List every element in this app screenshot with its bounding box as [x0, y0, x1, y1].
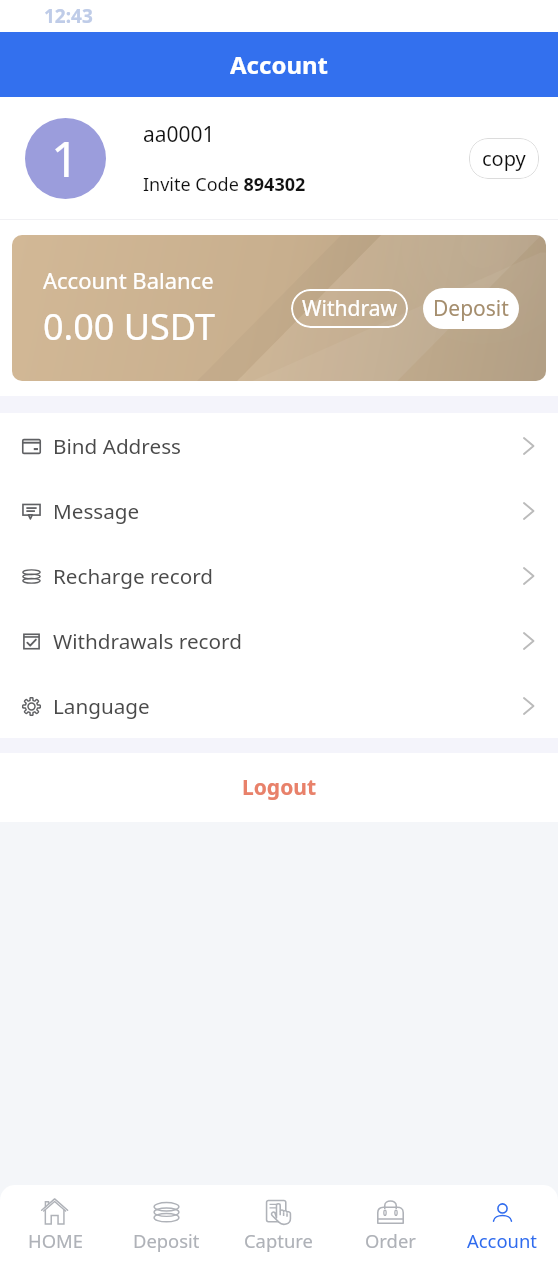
staticText: Withdraw [302, 294, 397, 323]
staticText: Invite Code 894302 [143, 172, 306, 197]
button[interactable]: Deposit [423, 288, 519, 329]
staticText: Logout [242, 773, 317, 802]
staticText: Account [230, 48, 328, 81]
button[interactable]: Withdrawals record [0, 608, 558, 673]
staticText: Language [53, 692, 520, 720]
button[interactable]: Withdraw [291, 289, 408, 328]
other: Deposit [151, 1195, 182, 1226]
other: Capture [263, 1195, 294, 1226]
staticText: Recharge record [53, 562, 520, 590]
staticText: Bind Address [53, 432, 520, 460]
button[interactable]: Logout [0, 753, 558, 822]
button[interactable]: Bind Address [0, 413, 558, 478]
staticText: 12:43 [44, 3, 93, 29]
staticText: Capture [244, 1228, 313, 1253]
button[interactable]: Home [0, 1194, 111, 1253]
other: Home [40, 1195, 71, 1226]
button[interactable]: Deposit [111, 1194, 222, 1253]
button[interactable]: Recharge record [0, 543, 558, 608]
staticText: Message [53, 497, 520, 525]
staticText: copy [482, 145, 526, 172]
staticText: Deposit [133, 1228, 200, 1253]
staticText: 1 [51, 125, 80, 192]
button[interactable]: copy [469, 138, 539, 179]
button[interactable]: Account [446, 1194, 558, 1253]
staticText: 0.00 USDT [43, 302, 216, 351]
staticText: aa0001 [143, 120, 215, 149]
staticText: Account Balance [43, 265, 214, 295]
button[interactable]: Order [334, 1194, 446, 1253]
staticText: Withdrawals record [53, 627, 520, 655]
other: Account [487, 1195, 518, 1226]
staticText: HOME [28, 1228, 83, 1253]
button[interactable]: Language [0, 673, 558, 738]
staticText: Order [365, 1228, 416, 1253]
button[interactable]: Message [0, 478, 558, 543]
staticText: Account [467, 1228, 537, 1253]
other: Order [375, 1195, 406, 1226]
staticText: Deposit [433, 294, 509, 323]
button[interactable]: Capture [222, 1194, 334, 1253]
